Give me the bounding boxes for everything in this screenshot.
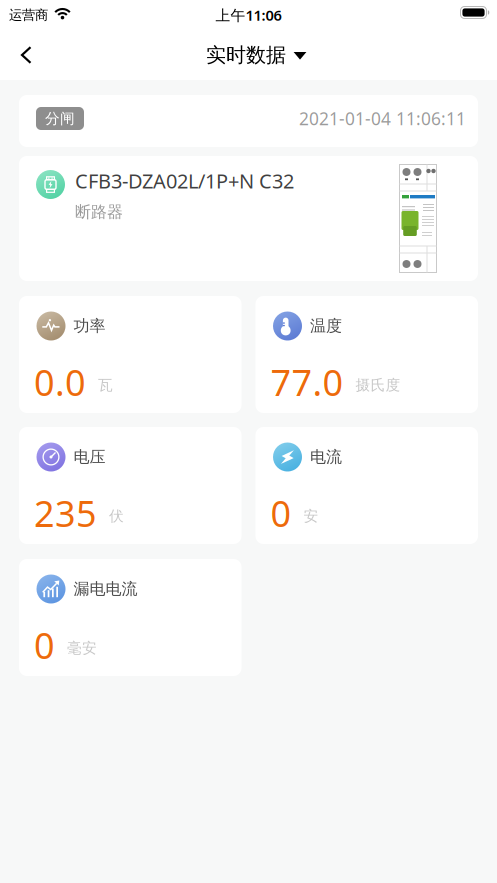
staticText: 瓦	[98, 376, 113, 394]
staticText: 功率	[73, 316, 105, 336]
staticText: 分闸	[45, 109, 75, 127]
staticText: 0	[270, 489, 291, 537]
staticText: 0	[34, 621, 55, 669]
staticText: 漏电电流	[73, 579, 137, 599]
staticText: 2021-01-04 11:06:11	[299, 107, 466, 130]
staticText: 上午11:06	[215, 5, 281, 25]
button[interactable]: 实时数据	[190, 43, 307, 67]
staticText: 伏	[109, 507, 124, 525]
staticText: 运营商	[9, 7, 48, 23]
button[interactable]: Back	[0, 32, 33, 78]
staticText: 235	[34, 489, 97, 537]
staticText: 77.0	[270, 358, 343, 406]
staticText: 毫安	[67, 639, 97, 657]
button[interactable]: 功率	[19, 296, 241, 413]
button[interactable]: 电压	[19, 427, 241, 544]
button[interactable]: 漏电电流	[19, 559, 241, 676]
button[interactable]: 温度	[255, 296, 478, 413]
staticText: 安	[303, 507, 318, 525]
staticText: 断路器	[75, 202, 123, 222]
staticText: CFB3-DZA02L/1P+N C32	[75, 167, 294, 194]
staticText: 摄氏度	[355, 376, 400, 394]
staticText: 实时数据	[206, 43, 286, 67]
staticText: 0.0	[34, 358, 86, 406]
staticText: 电流	[310, 447, 342, 467]
staticText: 温度	[310, 316, 342, 336]
staticText: 电压	[73, 447, 105, 467]
button[interactable]: 电流	[255, 427, 478, 544]
